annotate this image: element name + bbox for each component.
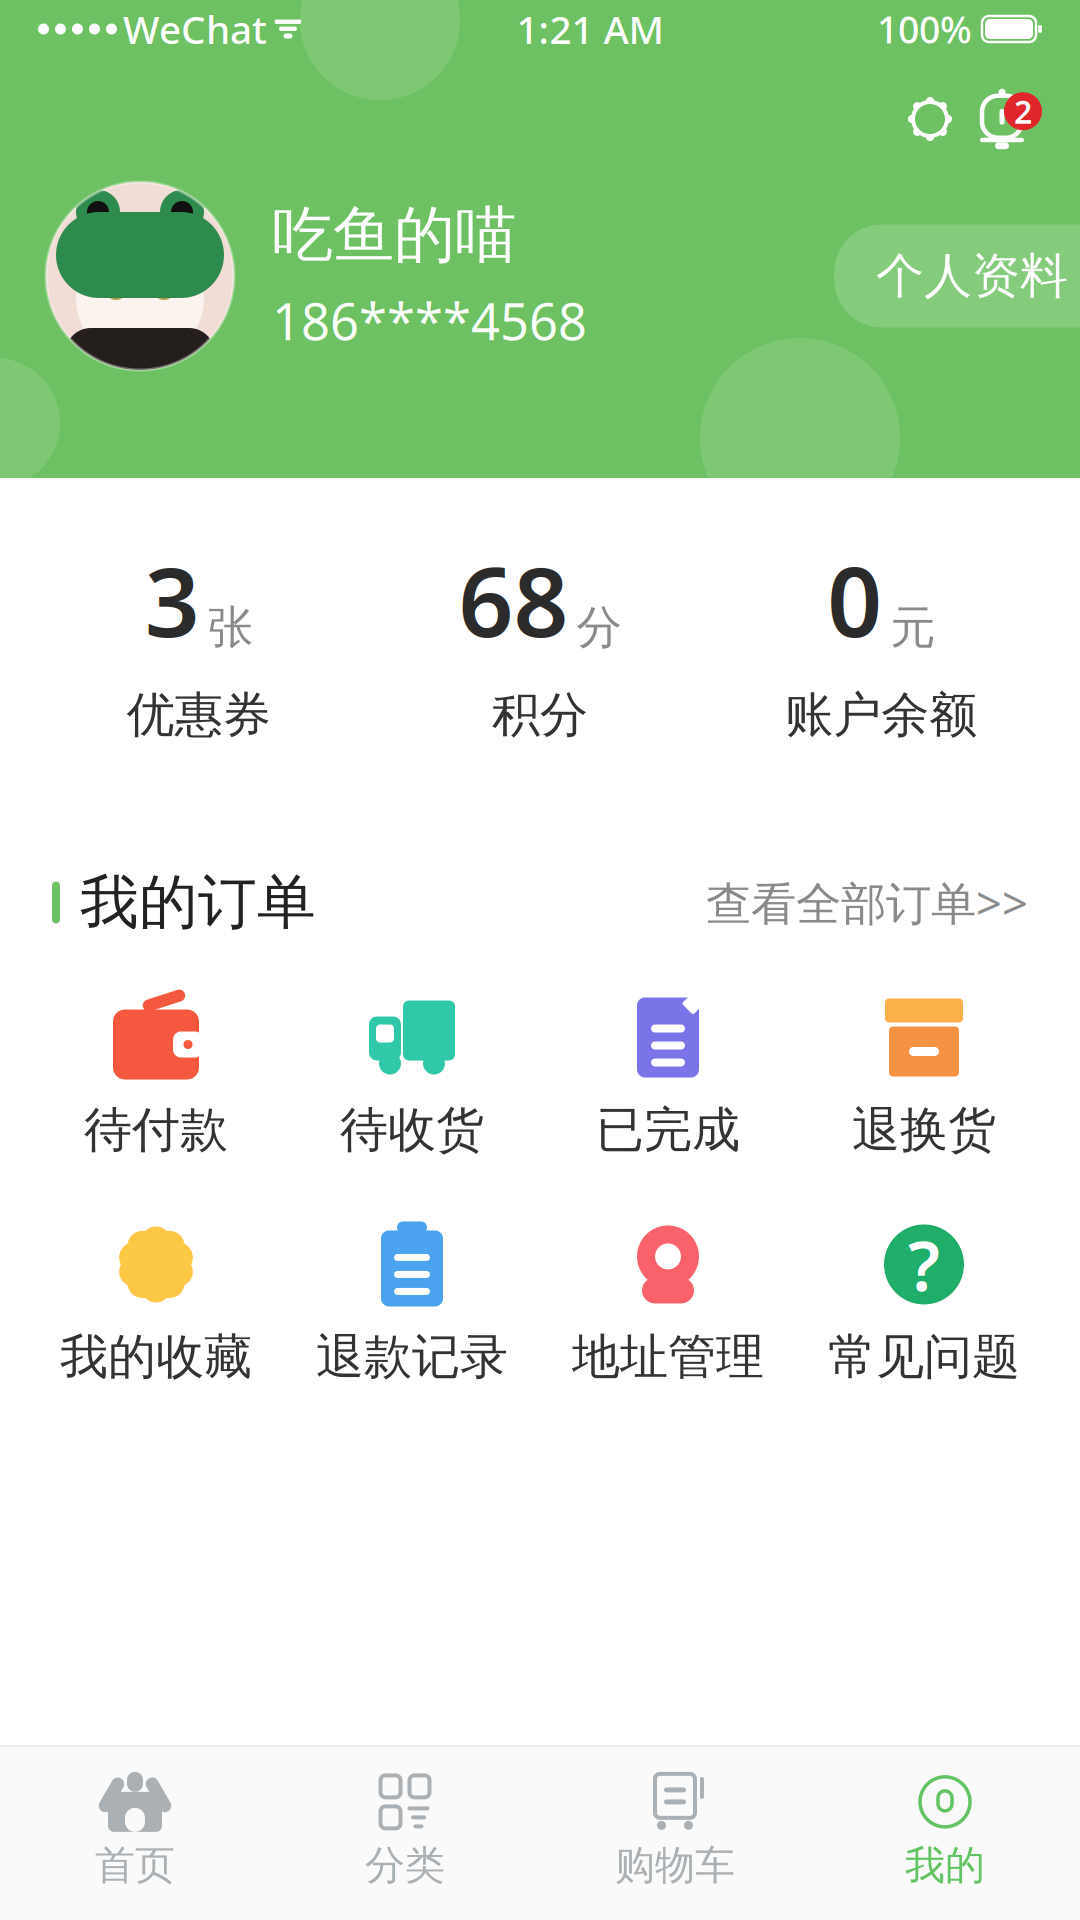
button[interactable]: 待付款 — [28, 982, 284, 1169]
staticText: 购物车 — [615, 1841, 735, 1890]
staticText: 首页 — [95, 1841, 175, 1890]
staticText: 0 — [827, 536, 882, 663]
staticText: 已完成 — [596, 1100, 740, 1159]
staticText: 地址管理 — [572, 1327, 764, 1386]
staticText: 张 — [208, 600, 253, 655]
button[interactable]: 首页 — [0, 1765, 270, 1898]
staticText: 个人资料 — [876, 246, 1068, 305]
staticText: 分 — [576, 600, 621, 655]
staticText: 100% — [877, 4, 972, 54]
staticText: 常见问题 — [828, 1327, 1020, 1386]
button[interactable]: 我的 — [810, 1765, 1080, 1898]
staticText: 账户余额 — [785, 685, 977, 744]
button[interactable]: 地址管理 — [540, 1209, 796, 1396]
button[interactable]: 个人资料 — [834, 224, 1080, 327]
staticText: WeChat — [123, 3, 267, 55]
staticText: 退换货 — [852, 1100, 996, 1159]
button[interactable]: 已完成 — [540, 982, 796, 1169]
button[interactable]: 我的收藏 — [28, 1209, 284, 1396]
staticText: 我的 — [905, 1841, 985, 1890]
button[interactable]: 分类 — [270, 1765, 540, 1898]
staticText: 分类 — [365, 1841, 445, 1890]
staticText: 退款记录 — [316, 1327, 508, 1386]
button[interactable]: 查看全部订单>> — [706, 872, 1028, 933]
staticText: 查看全部订单>> — [706, 872, 1028, 933]
staticText: 元 — [890, 600, 935, 655]
button[interactable]: ? — [796, 1209, 1052, 1396]
button[interactable]: 待收货 — [284, 982, 540, 1169]
staticText: 1:21 AM — [516, 3, 663, 55]
staticText: 我的订单 — [80, 866, 316, 938]
staticText: 积分 — [492, 685, 588, 744]
button[interactable]: 购物车 — [540, 1765, 810, 1898]
staticText: ? — [908, 1218, 940, 1310]
button[interactable]: 退款记录 — [284, 1209, 540, 1396]
button[interactable]: Notifications — [966, 80, 1044, 158]
staticText: 186****4568 — [272, 287, 587, 354]
staticText: 优惠券 — [127, 685, 271, 744]
staticText: 68 — [458, 536, 568, 663]
button[interactable]: 退换货 — [796, 982, 1052, 1169]
staticText: 待付款 — [84, 1100, 228, 1159]
staticText: 3 — [145, 536, 200, 663]
staticText: 2 — [1014, 90, 1032, 132]
staticText: 待收货 — [340, 1100, 484, 1159]
button[interactable]: Settings — [894, 83, 966, 155]
staticText: 吃鱼的喵 — [272, 198, 516, 273]
staticText: 我的收藏 — [60, 1327, 252, 1386]
